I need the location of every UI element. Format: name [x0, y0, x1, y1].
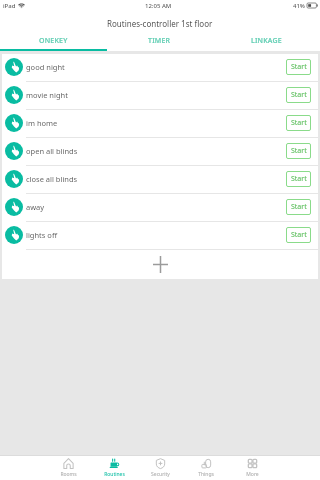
button[interactable]: im home: [2, 110, 318, 137]
staticText: 12:05 AM: [145, 2, 172, 10]
staticText: Security: [151, 471, 170, 478]
staticText: Start: [291, 62, 307, 72]
staticText: lights off: [26, 230, 58, 240]
staticText: Start: [291, 118, 307, 128]
staticText: LINKAGE: [251, 36, 282, 46]
button[interactable]: Start: [286, 227, 311, 243]
staticText: movie night: [26, 90, 68, 100]
staticText: Routines-controller 1st floor: [107, 18, 213, 29]
staticText: Start: [291, 202, 307, 212]
button[interactable]: Start: [286, 115, 311, 131]
button[interactable]: Rooms: [45, 456, 91, 480]
button[interactable]: Things: [183, 456, 229, 480]
button[interactable]: Start: [286, 59, 311, 75]
staticText: open all blinds: [26, 146, 78, 156]
staticText: TIMER: [148, 36, 171, 46]
button[interactable]: ONEKEY: [0, 32, 106, 49]
button[interactable]: movie night: [2, 82, 318, 109]
staticText: Start: [291, 174, 307, 184]
button[interactable]: open all blinds: [2, 138, 318, 165]
staticText: Start: [291, 230, 307, 240]
button[interactable]: More: [229, 456, 275, 480]
button[interactable]: Start: [286, 87, 311, 103]
staticText: 41%: [293, 2, 305, 10]
staticText: close all blinds: [26, 174, 78, 184]
button[interactable]: Security: [137, 456, 183, 480]
button[interactable]: Start: [286, 143, 311, 159]
button[interactable]: Add routine: [2, 250, 318, 279]
button[interactable]: away: [2, 194, 318, 221]
button[interactable]: Start: [286, 171, 311, 187]
button[interactable]: close all blinds: [2, 166, 318, 193]
button[interactable]: LINKAGE: [213, 32, 320, 49]
button[interactable]: Start: [286, 199, 311, 215]
staticText: Start: [291, 90, 307, 100]
button[interactable]: TIMER: [106, 32, 213, 49]
staticText: Rooms: [60, 471, 77, 478]
button[interactable]: Routines: [91, 456, 137, 480]
button[interactable]: good night: [2, 54, 318, 81]
staticText: good night: [26, 62, 65, 72]
staticText: Start: [291, 146, 307, 156]
staticText: Things: [198, 471, 214, 478]
staticText: More: [246, 471, 259, 478]
button[interactable]: lights off: [2, 222, 318, 249]
staticText: away: [26, 202, 45, 212]
staticText: ONEKEY: [39, 36, 68, 46]
staticText: Routines: [104, 471, 125, 478]
staticText: im home: [26, 118, 58, 128]
staticText: iPad: [3, 2, 16, 10]
